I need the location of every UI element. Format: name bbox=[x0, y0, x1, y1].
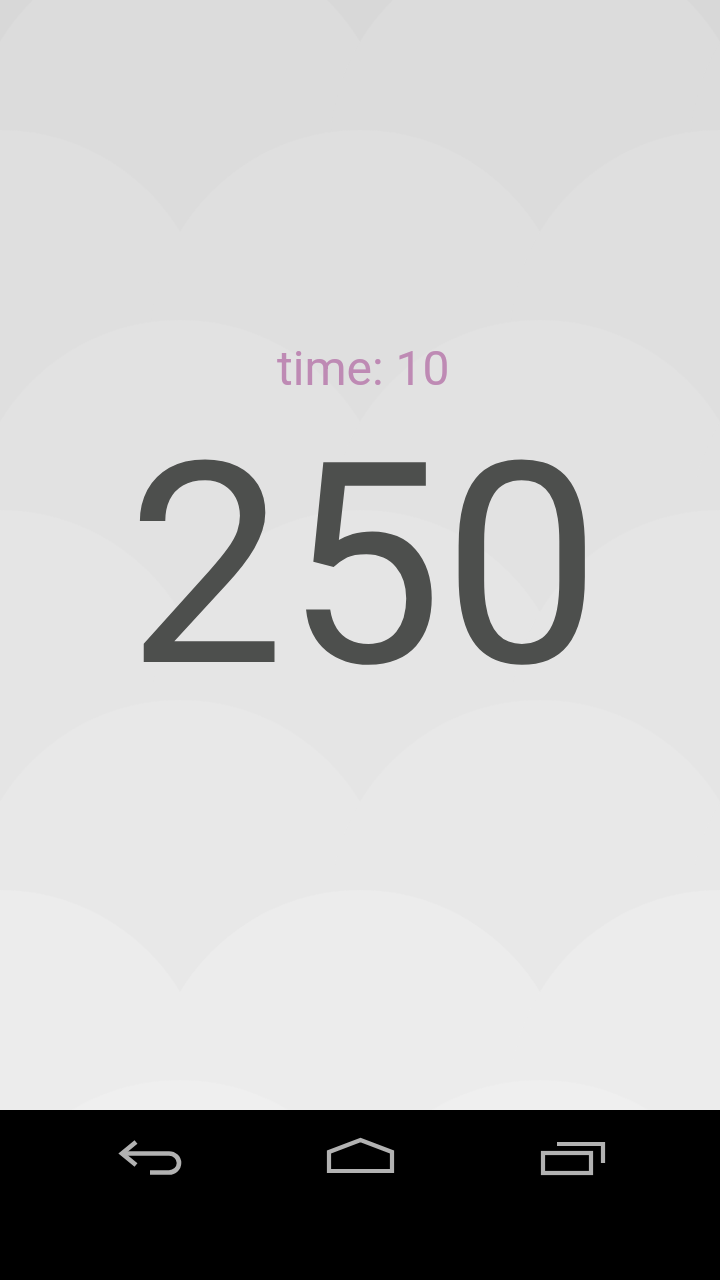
button[interactable]: Recent apps bbox=[528, 1122, 618, 1202]
staticText: time: 10 bbox=[277, 340, 450, 396]
button[interactable]: Home bbox=[315, 1122, 405, 1202]
staticText: 250 bbox=[127, 401, 601, 730]
button[interactable]: Back bbox=[105, 1122, 195, 1202]
